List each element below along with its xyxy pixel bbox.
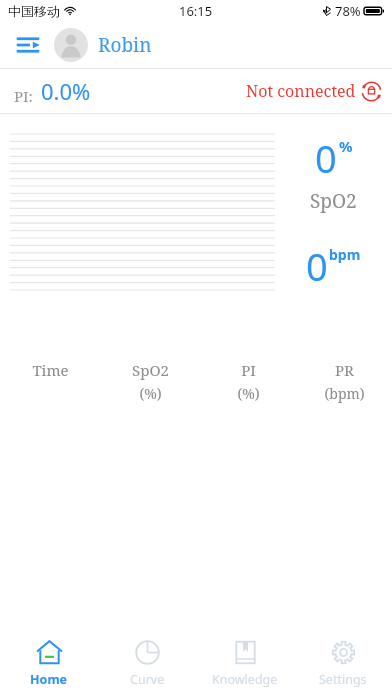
staticText: Knowledge bbox=[212, 671, 278, 688]
staticText: (%) bbox=[139, 384, 162, 403]
staticText: PI bbox=[241, 360, 256, 380]
button[interactable]: Curve bbox=[98, 630, 196, 696]
staticText: 0.0% bbox=[41, 76, 91, 106]
staticText: Curve bbox=[130, 671, 165, 688]
staticText: (%) bbox=[237, 384, 260, 403]
staticText: Robin bbox=[98, 32, 152, 58]
button[interactable]: Knowledge bbox=[196, 630, 294, 696]
staticText: PI: bbox=[14, 86, 33, 106]
staticText: bpm bbox=[329, 245, 361, 264]
button[interactable]: Settings bbox=[294, 630, 392, 696]
staticText: 中国移动 bbox=[8, 3, 60, 19]
staticText: % bbox=[339, 136, 353, 156]
staticText: 0 bbox=[315, 132, 337, 184]
staticText: SpO2 bbox=[310, 188, 357, 214]
staticText: SpO2 bbox=[132, 360, 169, 380]
button[interactable]: Menu bbox=[8, 25, 48, 65]
staticText: 16:15 bbox=[179, 2, 213, 20]
button[interactable]: Home bbox=[0, 630, 98, 696]
staticText: Not connected bbox=[246, 80, 356, 102]
staticText: Home bbox=[30, 671, 68, 688]
staticText: 0 bbox=[306, 240, 328, 290]
button[interactable]: Profile bbox=[54, 28, 88, 62]
staticText: Time bbox=[32, 360, 69, 380]
staticText: 78% bbox=[335, 2, 361, 20]
staticText: PR bbox=[335, 360, 354, 380]
button[interactable]: Reconnect bbox=[246, 80, 382, 102]
staticText: (bpm) bbox=[324, 384, 365, 403]
staticText: Settings bbox=[319, 671, 367, 688]
